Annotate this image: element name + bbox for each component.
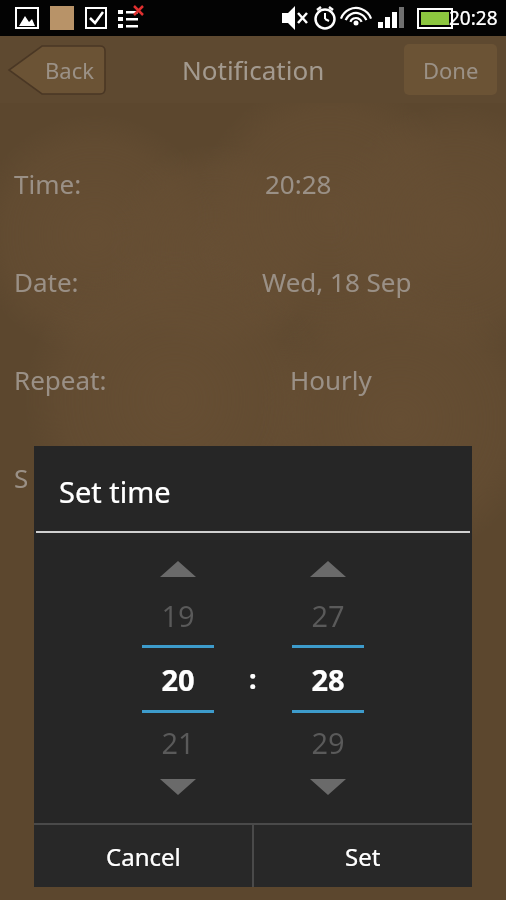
button[interactable]: Done — [404, 44, 497, 95]
staticText: Date: — [14, 264, 79, 298]
staticText: Repeat: — [14, 362, 107, 396]
staticText: 29 — [311, 723, 345, 762]
staticText: 28 — [311, 660, 345, 699]
staticText: 27 — [311, 596, 345, 635]
button[interactable]: Time: — [0, 166, 506, 200]
staticText: Wed, 18 Sep — [262, 264, 412, 298]
staticText: Hourly — [290, 362, 372, 396]
button[interactable]: 28 — [281, 648, 375, 710]
button[interactable]: Set — [254, 825, 472, 887]
staticText: Notification — [182, 52, 325, 87]
button[interactable]: Back — [8, 45, 106, 95]
button[interactable]: S — [0, 460, 506, 494]
staticText: Time: — [14, 166, 82, 200]
staticText: Set time — [59, 472, 171, 511]
button[interactable]: Decrement — [281, 770, 375, 804]
button[interactable]: Cancel — [34, 825, 252, 887]
staticText: 20 — [161, 660, 195, 699]
staticText: Set — [345, 840, 381, 873]
button[interactable]: Repeat: — [0, 362, 506, 396]
staticText: Cancel — [106, 840, 181, 873]
staticText: 20:28 — [265, 166, 332, 200]
staticText: 19 — [161, 596, 195, 635]
staticText: 20:28 — [449, 5, 498, 31]
button[interactable]: Increment — [281, 552, 375, 586]
button[interactable]: Decrement — [131, 770, 225, 804]
staticText: Back — [45, 55, 94, 85]
staticText: : — [249, 660, 257, 697]
staticText: S — [14, 460, 29, 494]
button[interactable]: Increment — [131, 552, 225, 586]
staticText: 21 — [161, 723, 195, 762]
button[interactable]: Date: — [0, 264, 506, 298]
button[interactable]: 20 — [131, 648, 225, 710]
staticText: Done — [423, 55, 479, 85]
